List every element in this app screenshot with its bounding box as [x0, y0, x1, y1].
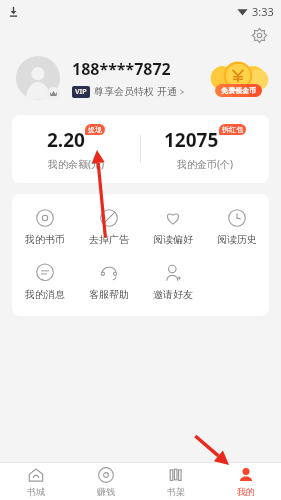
button[interactable]: 书城 [0, 467, 71, 497]
button[interactable]: 免费领金币 [205, 56, 271, 100]
staticText: 赚钱 [97, 486, 115, 497]
button[interactable]: VIP [72, 85, 185, 98]
staticText: 邀请好友 [153, 288, 193, 301]
staticText: 我的金币(个) [177, 157, 233, 171]
staticText: 我的 [237, 486, 255, 497]
staticText: 2.20 [47, 127, 85, 153]
button[interactable]: 我的消息 [12, 262, 77, 303]
staticText: 阅读历史 [217, 233, 257, 246]
button[interactable]: Avatar [16, 56, 60, 100]
button[interactable]: 阅读偏好 [141, 207, 205, 248]
button[interactable]: 阅读历史 [205, 207, 269, 248]
staticText: 尊享会员特权 [94, 85, 154, 98]
staticText: 188****7872 [72, 58, 171, 80]
button[interactable]: 邀请好友 [141, 262, 205, 303]
button[interactable]: 我的书币 [12, 207, 77, 248]
button[interactable]: 去掉广告 [77, 207, 141, 248]
staticText: 书城 [27, 486, 45, 497]
button[interactable]: 我的 [211, 467, 281, 497]
staticText: 书架 [167, 486, 185, 497]
staticText: 提现 [88, 125, 102, 134]
button[interactable]: 12075 [141, 127, 269, 171]
button[interactable]: 书架 [141, 467, 211, 497]
staticText: 客服帮助 [89, 288, 129, 301]
staticText: 我的消息 [25, 288, 65, 301]
staticText: 去掉广告 [89, 233, 129, 246]
staticText: 12075 [164, 127, 219, 153]
staticText: 我的余额(元) [48, 157, 104, 171]
button[interactable]: Settings [247, 23, 271, 47]
staticText: 我的书币 [25, 233, 65, 246]
staticText: 3:33 [252, 4, 274, 19]
staticText: 拆红包 [222, 125, 243, 134]
staticText: 阅读偏好 [153, 233, 193, 246]
button[interactable]: 2.20 [12, 127, 140, 171]
staticText: 开通 [157, 85, 177, 98]
button[interactable]: 赚钱 [71, 467, 141, 497]
staticText: VIP [75, 87, 87, 97]
staticText: 免费领金币 [221, 86, 256, 95]
button[interactable]: 客服帮助 [77, 262, 141, 303]
